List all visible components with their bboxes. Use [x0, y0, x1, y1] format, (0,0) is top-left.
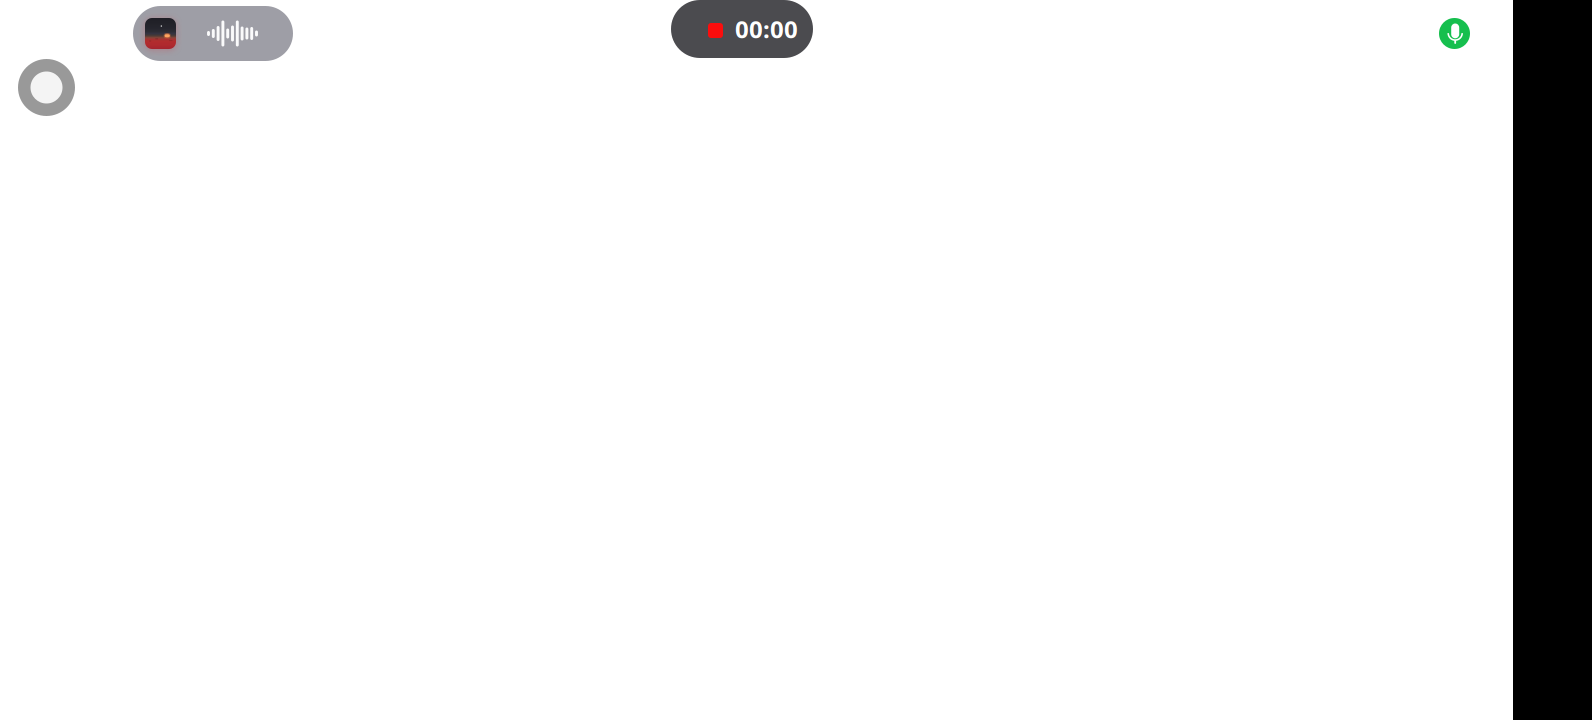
button[interactable]: Now Playing	[133, 6, 293, 61]
button[interactable]: Stop screen recording, 00:00	[671, 0, 813, 58]
staticText: 00:00	[735, 13, 798, 45]
button[interactable]: Record	[18, 59, 75, 116]
button[interactable]: Microphone in use	[1439, 18, 1470, 49]
